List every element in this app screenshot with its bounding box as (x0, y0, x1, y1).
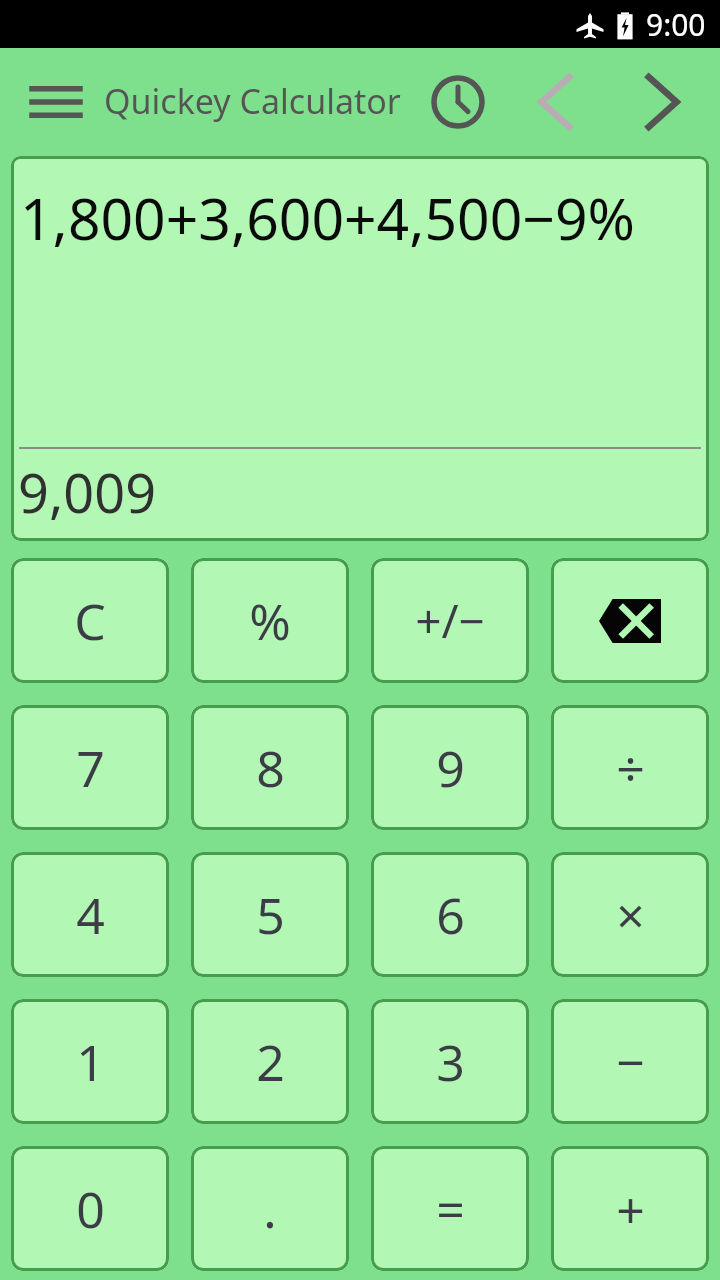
button[interactable]: 3 (371, 999, 529, 1124)
staticText: 6 (436, 881, 465, 949)
staticText: ÷ (616, 734, 645, 802)
button[interactable]: History (423, 67, 493, 137)
button[interactable]: × (551, 852, 709, 977)
staticText: 1,800+3,600+4,500−9% (20, 179, 709, 257)
staticText: 5 (256, 881, 285, 949)
button[interactable]: 0 (11, 1146, 169, 1271)
staticText: 9 (436, 734, 465, 802)
button[interactable]: +/− (371, 558, 529, 683)
staticText: − (616, 1028, 645, 1096)
staticText: . (263, 1175, 277, 1243)
staticText: 8 (256, 734, 285, 802)
button[interactable]: 1 (11, 999, 169, 1124)
staticText: C (74, 587, 106, 655)
button[interactable]: C (11, 558, 169, 683)
staticText: = (436, 1175, 465, 1243)
button[interactable]: 4 (11, 852, 169, 977)
button[interactable]: % (191, 558, 349, 683)
staticText: + (616, 1175, 645, 1243)
staticText: +/− (415, 589, 485, 652)
button[interactable]: . (191, 1146, 349, 1271)
button[interactable]: Backspace (551, 558, 709, 683)
staticText: 4 (76, 881, 105, 949)
staticText: 2 (256, 1028, 285, 1096)
button[interactable]: 9 (371, 705, 529, 830)
button[interactable]: + (551, 1146, 709, 1271)
button[interactable]: ÷ (551, 705, 709, 830)
button[interactable]: 7 (11, 705, 169, 830)
button[interactable]: 8 (191, 705, 349, 830)
staticText: 7 (76, 734, 105, 802)
button[interactable]: − (551, 999, 709, 1124)
button[interactable]: 6 (371, 852, 529, 977)
button[interactable]: Next (624, 63, 702, 141)
staticText: × (616, 881, 645, 949)
button[interactable]: Previous (516, 63, 594, 141)
button[interactable]: 1,800+3,600+4,500−9% (11, 156, 709, 541)
staticText: Quickey Calculator (104, 78, 401, 124)
button[interactable]: 5 (191, 852, 349, 977)
staticText: 9,009 (18, 455, 157, 529)
button[interactable]: = (371, 1146, 529, 1271)
staticText: % (249, 587, 291, 655)
staticText: 0 (76, 1175, 105, 1243)
staticText: 9:00 (646, 4, 706, 45)
button[interactable]: 2 (191, 999, 349, 1124)
staticText: 3 (436, 1028, 465, 1096)
staticText: 1 (76, 1028, 105, 1096)
button[interactable]: Menu (22, 68, 90, 136)
